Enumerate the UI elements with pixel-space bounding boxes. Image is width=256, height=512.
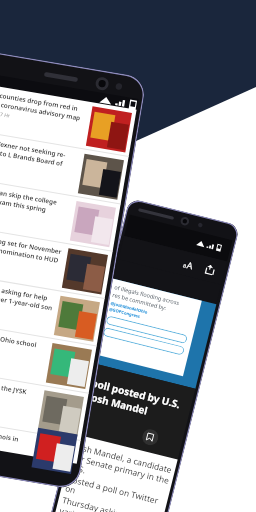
staticText: posted a poll on Twitter on bbox=[64, 473, 168, 512]
staticText: Senate hearing set for November 2 for Fu… bbox=[0, 230, 65, 265]
staticText: various types of illegals bbox=[59, 505, 150, 512]
button[interactable]: Text size bbox=[177, 253, 199, 275]
staticText: @GOPCongress bbox=[108, 306, 141, 320]
staticText: WSYX / 7 Hr bbox=[0, 108, 11, 120]
staticText: a bbox=[182, 261, 188, 270]
button[interactable]: Ohio counties drop from red in latest co… bbox=[0, 83, 137, 157]
button[interactable]: More kids head to Ohio school nurse's of… bbox=[0, 320, 97, 394]
staticText: More kids head to Ohio school nurse's of… bbox=[0, 325, 48, 360]
staticText: @JoshMandelOhio bbox=[110, 301, 149, 316]
button[interactable] bbox=[105, 315, 188, 344]
staticText: Columbus mom asking for help for herself… bbox=[0, 277, 57, 313]
staticText: Students can skip the college entrance e… bbox=[0, 183, 73, 218]
staticText: Thursday asking. "Of the bbox=[61, 494, 158, 512]
staticText: A bbox=[186, 258, 194, 271]
button[interactable]: Bookmark bbox=[141, 427, 160, 447]
button[interactable]: Columbus mom asking for help for herself… bbox=[0, 272, 105, 346]
staticText: Josh Mandel, a candidate bbox=[75, 441, 173, 475]
staticText: Leslie Wexner not seeking re-election to… bbox=[0, 135, 81, 171]
button[interactable]: Students can skip the college entrance e… bbox=[0, 178, 121, 252]
button[interactable]: Senate hearing set for November 2 for Fu… bbox=[0, 225, 113, 299]
button[interactable]: Share bbox=[199, 259, 220, 280]
staticText: Josh Mandel bbox=[87, 389, 149, 417]
staticText: Buckeyes fall to tiny Illinois in overti… bbox=[0, 419, 32, 455]
staticText: Ohio counties drop from red in latest co… bbox=[0, 88, 89, 123]
button[interactable]: Ohio State to require the JYSK vaccine bbox=[0, 367, 89, 441]
staticText: res be committed by: bbox=[112, 291, 168, 312]
staticText: Ohio State to require the JYSK vaccine bbox=[0, 372, 40, 399]
button[interactable]: Buckeyes fall to tiny Illinois in overti… bbox=[0, 414, 81, 464]
button[interactable] bbox=[102, 327, 185, 356]
staticText: of illegals flooding across bbox=[114, 283, 180, 307]
button[interactable]: Leslie Wexner not seeking re-election to… bbox=[0, 130, 129, 204]
staticText: poll posted by U.S. bbox=[90, 376, 182, 411]
staticText: for Senate primary in the U.S. bbox=[69, 451, 174, 497]
